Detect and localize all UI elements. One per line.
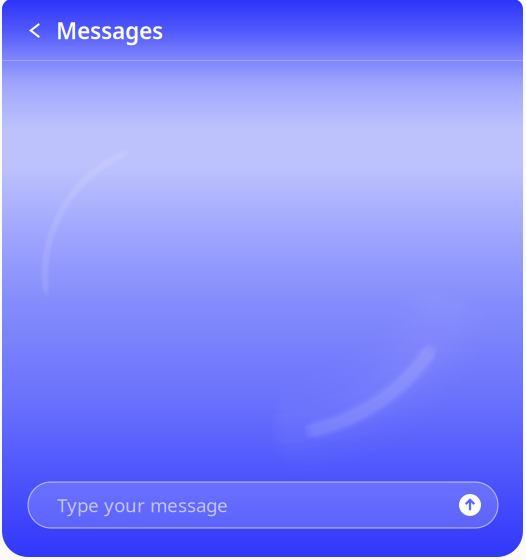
button[interactable]: Back [0,5,56,55]
staticText: Messages [56,15,163,45]
button[interactable]: Send [453,488,487,522]
staticText: Type your message [57,493,228,517]
